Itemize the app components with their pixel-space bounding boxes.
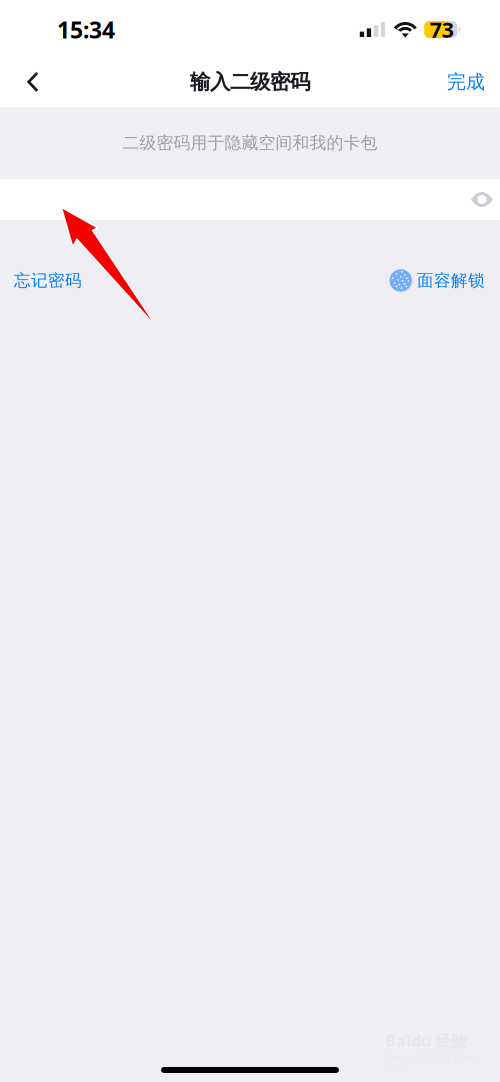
staticText: 73	[430, 15, 454, 44]
staticText: 输入二级密码	[190, 69, 310, 95]
button[interactable]: 忘记密码	[14, 258, 82, 302]
staticText: Baidu 经验	[385, 1029, 467, 1051]
staticText: 二级密码用于隐藏空间和我的卡包	[122, 132, 377, 154]
button[interactable]: 显示密码	[460, 179, 500, 220]
button[interactable]: 面容解锁	[389, 258, 485, 302]
staticText: 15:34	[57, 14, 115, 45]
staticText: 完成	[447, 70, 485, 94]
button[interactable]: 完成	[447, 57, 485, 107]
staticText: 忘记密码	[14, 270, 82, 291]
staticText: 面容解锁	[417, 270, 485, 291]
button[interactable]: 返回	[10, 57, 56, 107]
